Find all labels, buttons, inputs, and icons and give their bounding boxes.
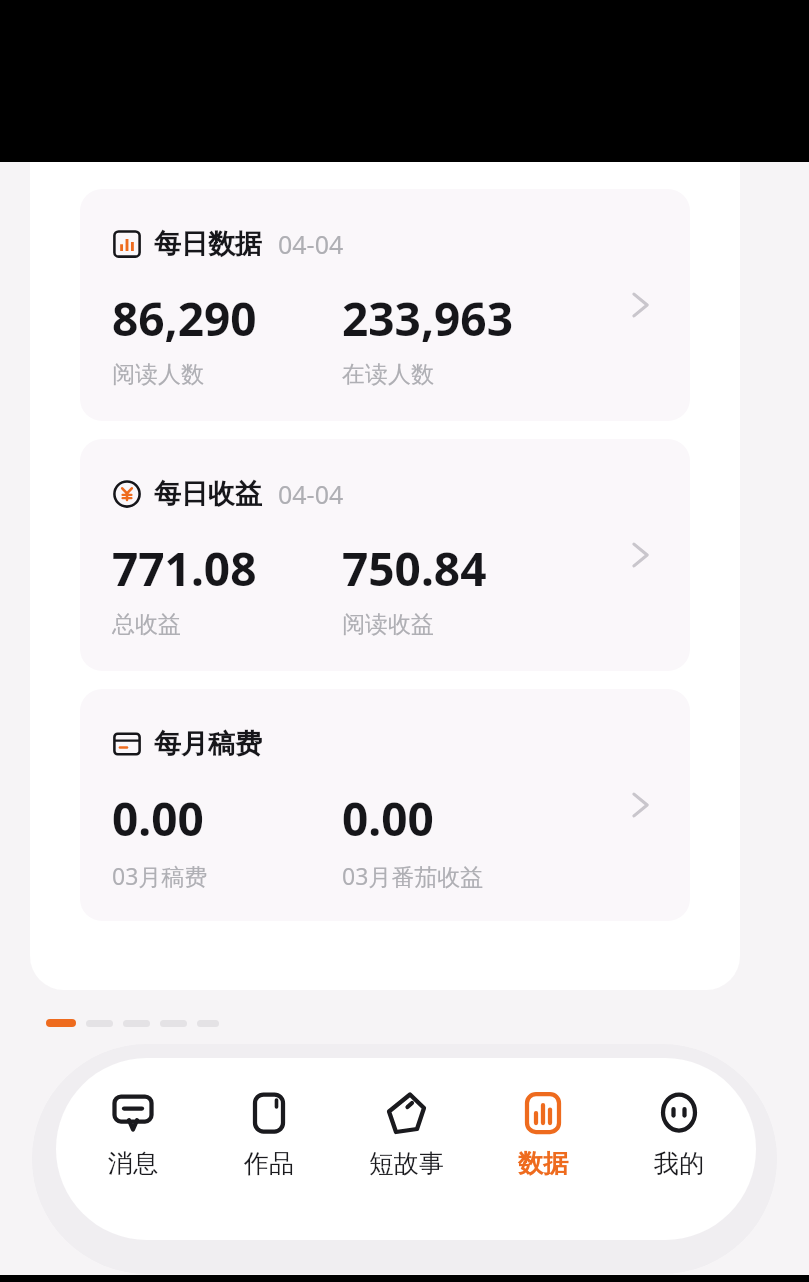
staticText: 在读人数 (342, 360, 434, 389)
other: 消息 (108, 1088, 158, 1138)
staticText: 04-04 (278, 227, 344, 261)
staticText: 750.84 (342, 537, 487, 600)
button[interactable]: 作品 (209, 1058, 329, 1179)
staticText: 771.08 (112, 537, 257, 600)
staticText: 短故事 (369, 1148, 444, 1179)
staticText: 03月番茄收益 (342, 860, 484, 891)
other: 作品 (244, 1088, 294, 1138)
staticText: 0.00 (112, 787, 204, 850)
staticText: 0.00 (342, 787, 434, 850)
staticText: 消息 (108, 1148, 158, 1179)
button[interactable]: 每月稿费 (80, 689, 690, 921)
staticText: 阅读收益 (342, 610, 434, 639)
staticText: 我的 (654, 1148, 704, 1179)
staticText: 每月稿费 (154, 727, 262, 761)
staticText: 每日收益 (154, 477, 262, 511)
staticText: 86,290 (112, 287, 257, 350)
staticText: 总收益 (112, 610, 181, 639)
staticText: 233,963 (342, 287, 513, 350)
other: 我的 (654, 1088, 704, 1138)
other: 数据 (518, 1088, 568, 1138)
button[interactable]: 每日数据 (80, 189, 690, 421)
other: 短故事 (381, 1088, 431, 1138)
button[interactable]: 我的 (619, 1058, 739, 1179)
staticText: 每日数据 (154, 227, 262, 261)
button[interactable]: 每日收益 (80, 439, 690, 671)
button[interactable]: 消息 (73, 1058, 193, 1179)
button[interactable]: 数据 (483, 1058, 603, 1179)
staticText: 阅读人数 (112, 360, 204, 389)
button[interactable]: 短故事 (346, 1058, 466, 1179)
staticText: 04-04 (278, 477, 344, 511)
staticText: 作品 (244, 1148, 294, 1179)
staticText: 数据 (518, 1148, 568, 1179)
staticText: 03月稿费 (112, 860, 208, 891)
